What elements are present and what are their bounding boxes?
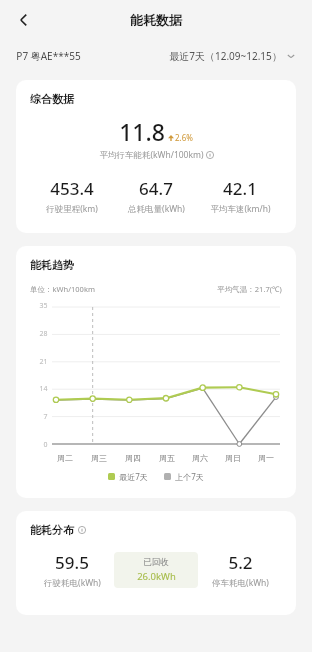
staticText: 59.5 (55, 551, 89, 574)
staticText: 周一 (258, 453, 274, 463)
staticText: 行驶耗电(kWh) (44, 577, 101, 589)
staticText: 11.8 (119, 116, 165, 147)
staticText: 周四 (125, 453, 141, 463)
button[interactable]: 上个7天 (164, 471, 204, 482)
staticText: 2.6% (175, 132, 193, 143)
staticText: 14 (39, 384, 48, 394)
staticText: 能耗分布 (30, 523, 74, 537)
button[interactable]: 能耗趋势 (16, 246, 296, 498)
staticText: 能耗数据 (130, 12, 182, 28)
staticText: 行驶里程(km) (46, 203, 98, 215)
button[interactable]: 综合数据 (16, 80, 296, 233)
staticText: 单位：kWh/100km (30, 284, 95, 294)
button[interactable]: 59.5 (30, 551, 114, 589)
staticText: 平均气温：21.7(℃) (217, 284, 282, 294)
button[interactable]: 已回收 (114, 552, 198, 588)
staticText: 21 (39, 357, 48, 367)
button[interactable]: 453.4 (30, 177, 114, 215)
staticText: 周五 (159, 453, 175, 463)
button[interactable]: 5.2 (198, 551, 282, 589)
staticText: 42.1 (223, 177, 257, 200)
staticText: 上个7天 (175, 471, 204, 482)
staticText: 周三 (91, 453, 107, 463)
staticText: 26.0kWh (137, 570, 176, 583)
staticText: 能耗趋势 (30, 258, 74, 272)
button[interactable]: 能耗分布 (16, 511, 296, 615)
button[interactable]: 64.7 (114, 177, 198, 215)
staticText: 平均行车能耗(kWh/100km) (99, 149, 204, 161)
staticText: P7 粤AE***55 (16, 49, 81, 63)
staticText: 最近7天 (119, 471, 148, 482)
staticText: 综合数据 (30, 92, 74, 106)
staticText: 最近7天（12.09~12.15） (169, 49, 282, 63)
button[interactable]: 42.1 (198, 177, 282, 215)
staticText: 周日 (225, 453, 241, 463)
button[interactable]: Back (8, 4, 40, 36)
staticText: 周六 (192, 453, 208, 463)
staticText: 0 (43, 440, 48, 450)
staticText: 周二 (57, 453, 73, 463)
button[interactable]: 最近7天 (108, 471, 148, 482)
staticText: 35 (39, 301, 48, 311)
staticText: 停车耗电(kWh) (212, 577, 269, 589)
button[interactable]: 最近7天（12.09~12.15） (169, 49, 296, 63)
staticText: 453.4 (50, 177, 94, 200)
staticText: 7 (43, 412, 48, 422)
staticText: 已回收 (143, 557, 169, 568)
staticText: 总耗电量(kWh) (128, 203, 185, 215)
staticText: 28 (39, 329, 48, 339)
staticText: 5.2 (228, 551, 253, 574)
staticText: 平均车速(km/h) (210, 203, 271, 215)
staticText: 64.7 (139, 177, 173, 200)
